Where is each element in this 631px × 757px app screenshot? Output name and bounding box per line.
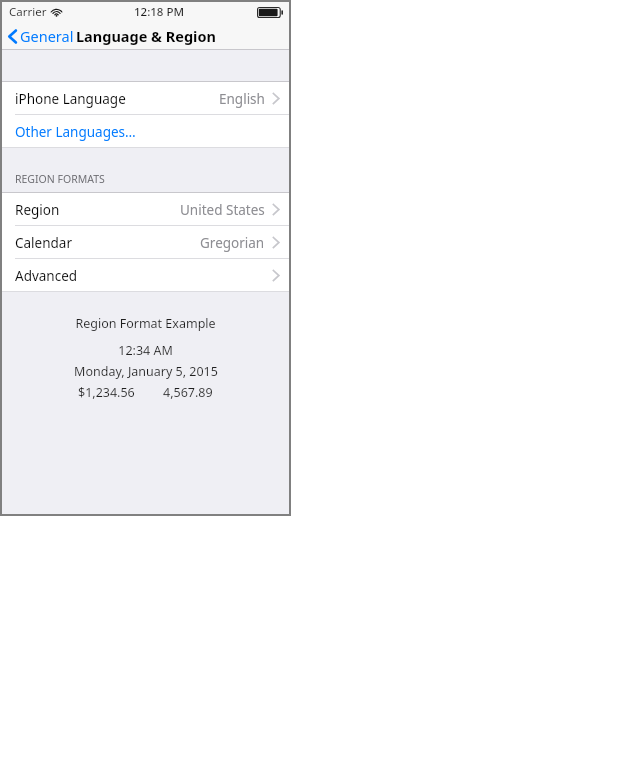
- staticText: Region: [15, 201, 60, 219]
- button[interactable]: Region: [2, 193, 289, 226]
- staticText: 12:34 AM: [118, 342, 173, 359]
- button[interactable]: iPhone Language: [2, 82, 289, 115]
- staticText: Carrier: [9, 4, 47, 20]
- staticText: English: [219, 90, 265, 108]
- staticText: Gregorian: [200, 234, 265, 252]
- button[interactable]: Other Languages…: [2, 115, 289, 148]
- staticText: Language & Region: [76, 26, 216, 46]
- staticText: General: [20, 26, 74, 46]
- button[interactable]: General: [2, 23, 80, 49]
- staticText: 4,567.89: [163, 384, 213, 401]
- staticText: Other Languages…: [15, 123, 136, 141]
- staticText: iPhone Language: [15, 90, 126, 108]
- staticText: Region Format Example: [75, 315, 216, 332]
- staticText: Advanced: [15, 267, 78, 285]
- staticText: 12:18 PM: [134, 4, 185, 20]
- button[interactable]: Calendar: [2, 226, 289, 259]
- staticText: United States: [180, 201, 265, 219]
- staticText: Monday, January 5, 2015: [74, 363, 218, 380]
- staticText: Calendar: [15, 234, 72, 252]
- staticText: $1,234.56: [78, 384, 135, 401]
- button[interactable]: Advanced: [2, 259, 289, 292]
- staticText: REGION FORMATS: [15, 172, 105, 186]
